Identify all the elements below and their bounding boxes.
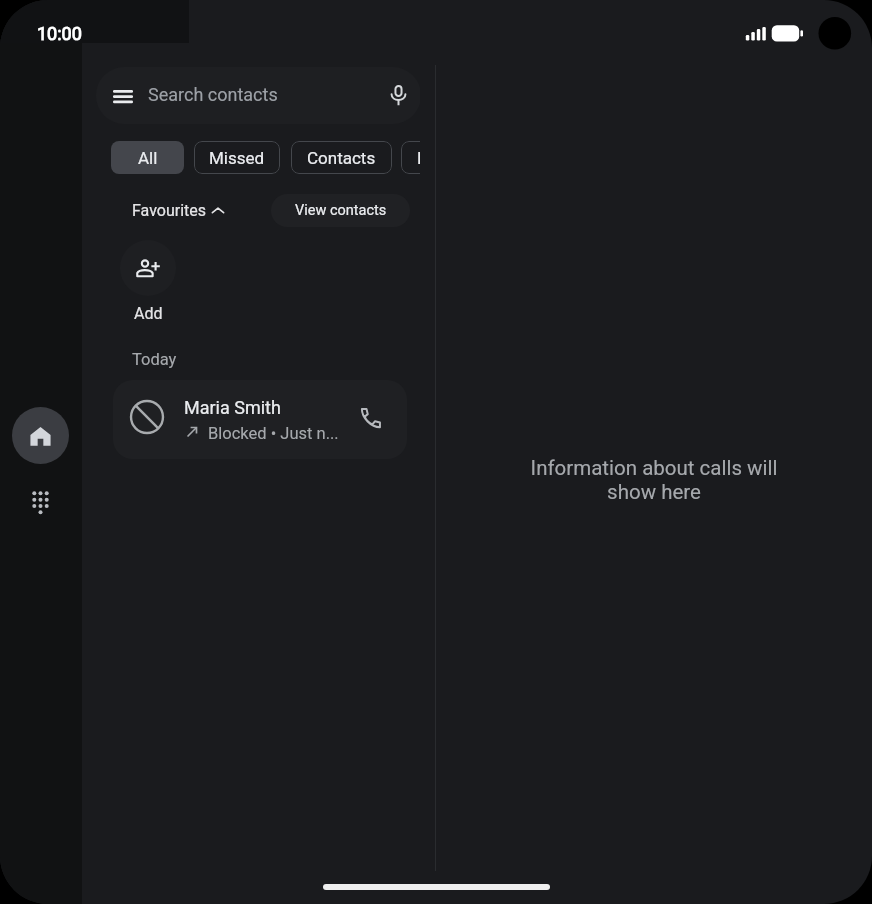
staticText: Blocked • Just n...	[208, 424, 339, 443]
button[interactable]: Recents	[12, 407, 69, 464]
staticText: Information about calls will show here	[522, 456, 786, 504]
button[interactable]: Maria Smith	[113, 380, 407, 459]
staticText: Favourites	[417, 148, 420, 168]
staticText: All	[138, 148, 158, 168]
staticText: 10:00	[37, 23, 82, 44]
button[interactable]: Add	[120, 240, 176, 323]
button[interactable]: Missed	[194, 141, 280, 174]
staticText: Add	[134, 304, 163, 323]
button[interactable]: Search contacts	[96, 67, 420, 124]
button[interactable]: Contacts	[291, 141, 392, 174]
staticText: Missed	[209, 148, 265, 168]
button[interactable]: Favourites	[401, 141, 420, 174]
button[interactable]: Favourites	[132, 201, 225, 220]
staticText: Search contacts	[148, 84, 278, 105]
button[interactable]: Voice search	[381, 78, 415, 112]
button[interactable]: Call Maria Smith	[353, 400, 387, 434]
staticText: Favourites	[132, 201, 207, 220]
staticText: View contacts	[295, 202, 387, 219]
staticText: Contacts	[307, 148, 376, 168]
button[interactable]: All	[111, 141, 184, 174]
staticText: Maria Smith	[184, 397, 281, 418]
button[interactable]: View contacts	[271, 194, 410, 227]
button[interactable]: Dialpad	[18, 479, 62, 523]
staticText: Today	[132, 350, 177, 369]
